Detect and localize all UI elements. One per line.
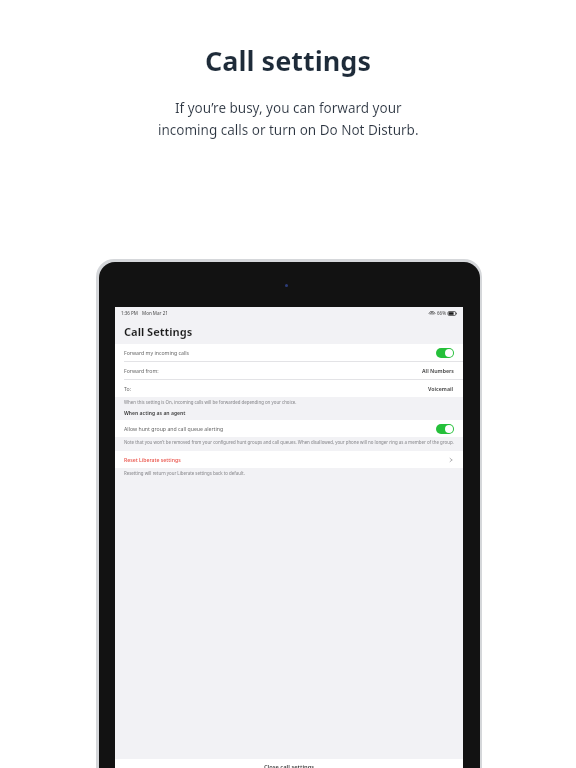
staticText: Reset Liberate settings [124,456,181,463]
staticText: Call Settings [124,324,193,339]
staticText: 1:36 PM [121,310,138,316]
staticText: All Numbers [422,367,454,374]
button[interactable]: Close call settings [115,759,463,768]
staticText: Resetting will return your Liberate sett… [124,470,245,476]
button[interactable]: Forward my incoming calls [115,344,463,361]
staticText: If you’re busy, you can forward your [175,99,402,117]
button[interactable]: Forward from: [115,362,463,379]
staticText: Forward from: [124,367,159,374]
button[interactable]: Toggle on [436,424,454,434]
button[interactable]: Toggle on [436,348,454,358]
staticText: 66% [437,310,446,316]
button[interactable]: Allow hunt group and call queue alerting [115,420,463,437]
staticText: Note that you won’t be removed from your… [124,439,454,445]
button[interactable]: To: [115,380,463,397]
staticText: Allow hunt group and call queue alerting [124,425,224,432]
staticText: incoming calls or turn on Do Not Disturb… [158,121,419,139]
staticText: Voicemail [428,385,454,392]
staticText: To: [124,385,132,392]
staticText: Call settings [205,42,371,79]
staticText: Forward my incoming calls [124,349,190,356]
staticText: When this setting is On, incoming calls … [124,399,297,405]
staticText: When acting as an agent [124,410,186,417]
staticText: Mon Mar 21 [142,310,168,316]
staticText: Close call settings [264,763,315,768]
button[interactable]: Reset Liberate settings [115,451,463,468]
